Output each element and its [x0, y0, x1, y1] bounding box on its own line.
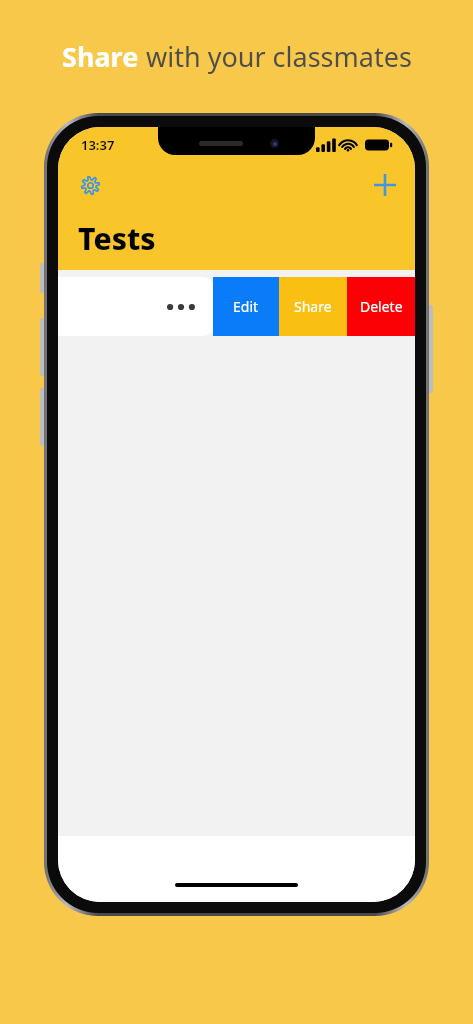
button[interactable]: Delete: [347, 277, 415, 336]
staticText: Delete: [360, 297, 403, 316]
staticText: with your classmates: [146, 38, 412, 75]
staticText: Tests: [78, 218, 156, 259]
button[interactable]: Settings: [73, 168, 107, 202]
staticText: Edit: [233, 297, 259, 316]
staticText: Share: [294, 297, 332, 316]
staticText: Share: [62, 38, 146, 75]
button[interactable]: Share: [279, 277, 347, 336]
staticText: 13:37: [81, 136, 115, 154]
button[interactable]: List item: [58, 277, 213, 336]
button[interactable]: Edit: [213, 277, 279, 336]
button[interactable]: Add: [368, 168, 402, 202]
